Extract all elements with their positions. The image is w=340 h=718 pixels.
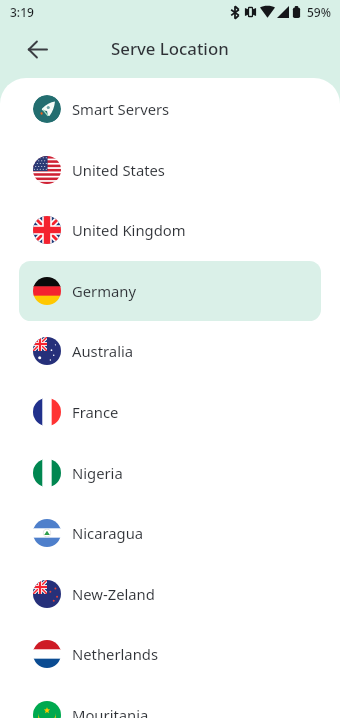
- staticText: Mouritania: [72, 705, 149, 718]
- button[interactable]: Germany: [19, 261, 321, 321]
- button[interactable]: Back: [22, 34, 52, 64]
- staticText: New-Zeland: [72, 584, 155, 604]
- staticText: Nicaragua: [72, 523, 144, 543]
- staticText: Nigeria: [72, 463, 123, 483]
- staticText: 3:19: [10, 4, 34, 20]
- staticText: France: [72, 402, 119, 422]
- button[interactable]: Mouritania: [19, 685, 321, 718]
- staticText: United Kingdom: [72, 220, 186, 240]
- staticText: Germany: [72, 281, 137, 301]
- button[interactable]: Netherlands: [19, 624, 321, 684]
- staticText: Australia: [72, 341, 134, 361]
- staticText: Smart Servers: [72, 99, 170, 119]
- button[interactable]: Nicaragua: [19, 503, 321, 563]
- staticText: United States: [72, 160, 165, 180]
- button[interactable]: Smart Servers: [19, 79, 321, 139]
- button[interactable]: Nigeria: [19, 443, 321, 503]
- button[interactable]: New-Zeland: [19, 564, 321, 624]
- button[interactable]: United States: [19, 140, 321, 200]
- staticText: Serve Location: [111, 37, 229, 60]
- button[interactable]: United Kingdom: [19, 200, 321, 260]
- staticText: Netherlands: [72, 644, 158, 664]
- staticText: 59%: [307, 4, 331, 20]
- button[interactable]: France: [19, 382, 321, 442]
- button[interactable]: Australia: [19, 321, 321, 381]
